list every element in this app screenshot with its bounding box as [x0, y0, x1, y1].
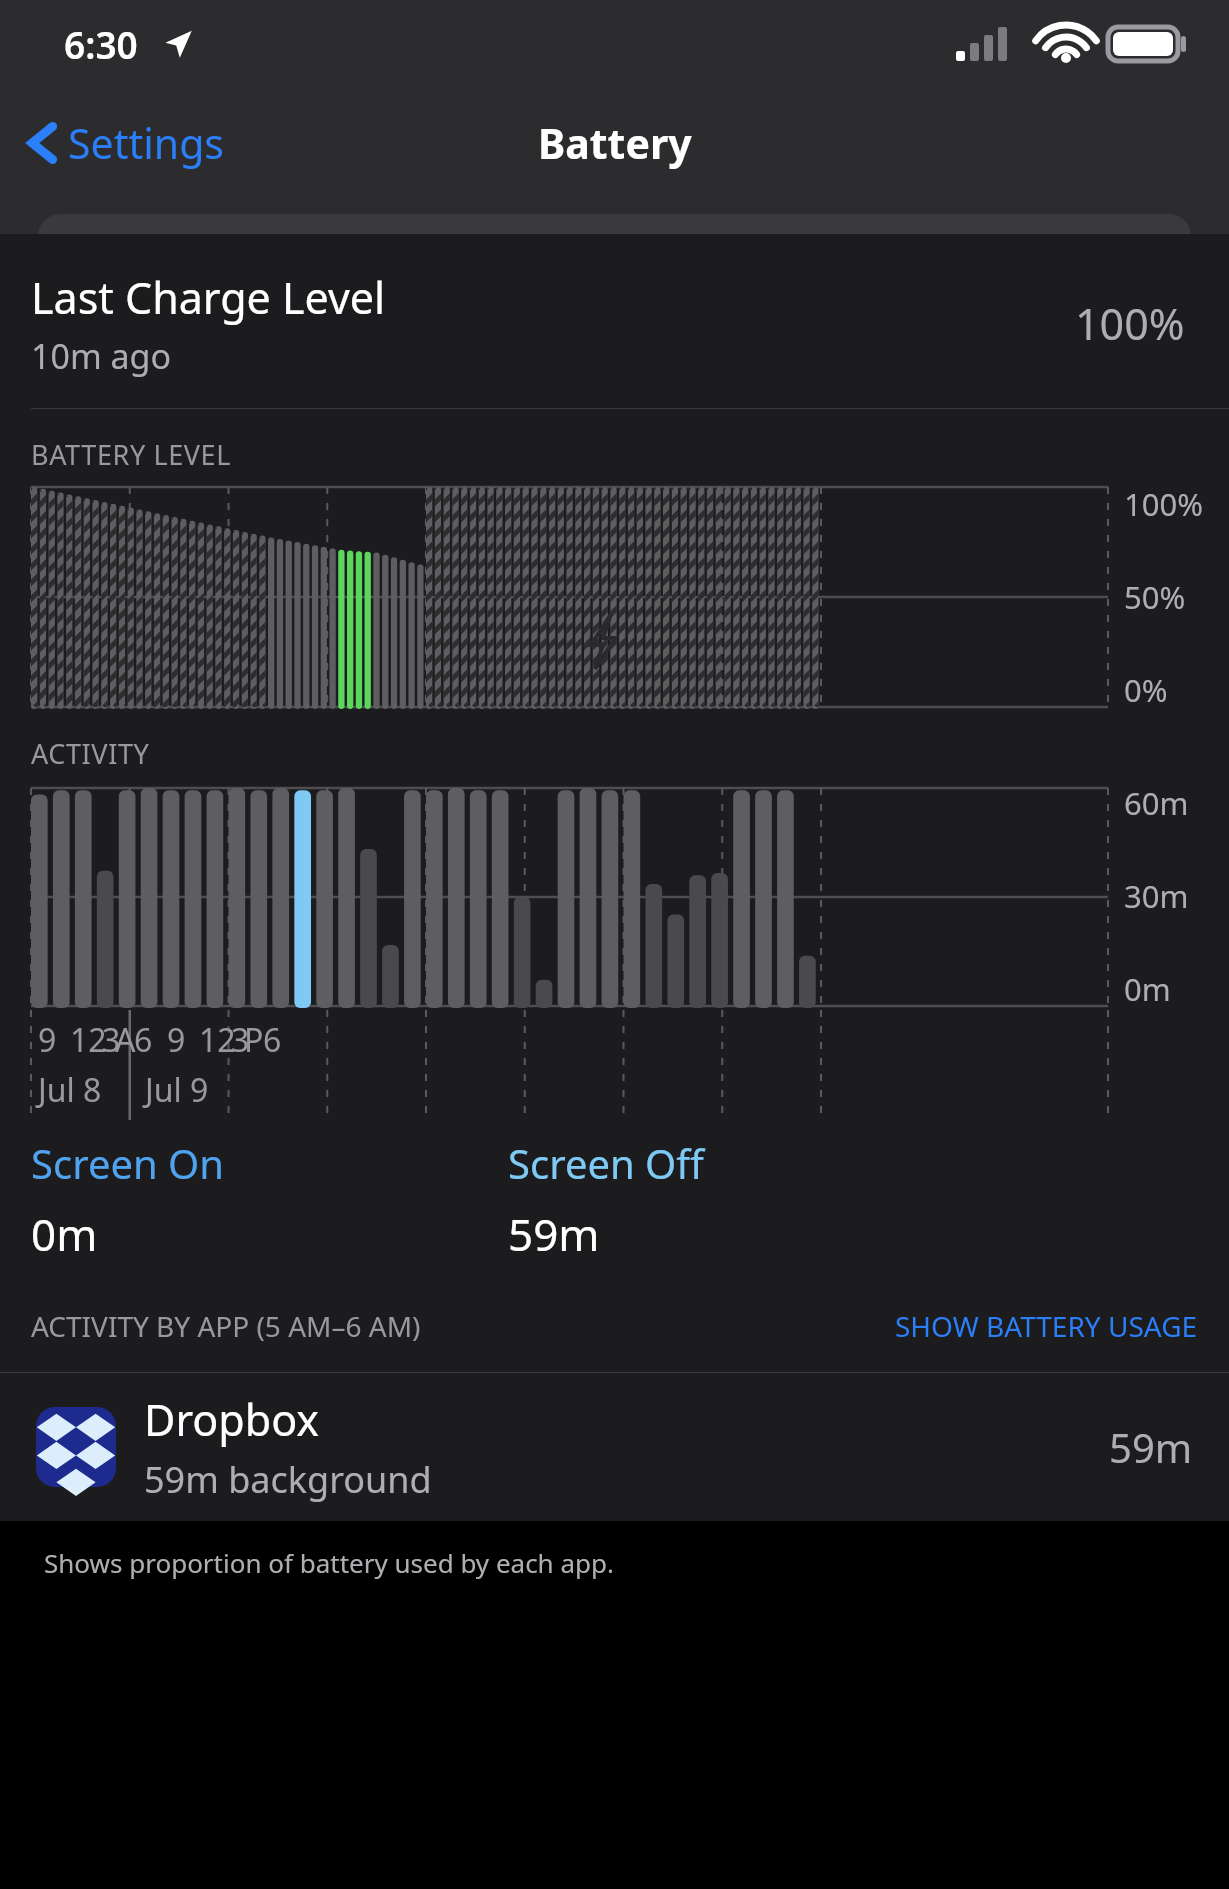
staticText: Battery: [538, 115, 692, 171]
staticText: Shows proportion of battery used by each…: [44, 1545, 614, 1580]
staticText: 59m: [1109, 1420, 1193, 1474]
staticText: 0%: [1124, 669, 1168, 711]
staticText: 9: [167, 1018, 186, 1062]
staticText: SHOW BATTERY USAGE: [895, 1307, 1198, 1345]
staticText: Screen Off: [508, 1136, 704, 1190]
staticText: 6: [263, 1018, 282, 1062]
staticText: BATTERY LEVEL: [31, 436, 231, 473]
staticText: 3: [102, 1018, 121, 1062]
staticText: 12 P: [199, 1018, 264, 1062]
staticText: 59m background: [144, 1455, 432, 1504]
staticText: 6: [134, 1018, 153, 1062]
staticText: Settings: [68, 115, 225, 171]
staticText: Jul 8: [38, 1068, 102, 1112]
staticText: 60m: [1124, 782, 1189, 824]
staticText: 9: [38, 1018, 57, 1062]
staticText: 100%: [1124, 483, 1203, 525]
button[interactable]: Settings: [20, 109, 233, 177]
staticText: 12 A: [70, 1018, 136, 1062]
staticText: 3: [231, 1018, 250, 1062]
staticText: 6:30: [64, 19, 138, 69]
button[interactable]: Dropbox: [0, 1373, 1229, 1521]
staticText: 50%: [1124, 576, 1186, 618]
staticText: 59m: [508, 1204, 600, 1264]
staticText: Screen On: [31, 1136, 225, 1190]
button[interactable]: Screen On: [31, 1136, 225, 1264]
staticText: Jul 9: [145, 1068, 209, 1112]
staticText: 30m: [1124, 875, 1189, 917]
staticText: 100%: [1075, 294, 1185, 353]
staticText: ACTIVITY: [31, 735, 150, 772]
staticText: 0m: [31, 1204, 98, 1264]
staticText: Last Charge Level: [31, 268, 386, 327]
staticText: ACTIVITY BY APP (5 AM–6 AM): [31, 1307, 421, 1345]
staticText: 10m ago: [31, 333, 172, 379]
staticText: Dropbox: [144, 1390, 320, 1449]
button[interactable]: Screen Off: [508, 1136, 704, 1264]
staticText: 0m: [1124, 968, 1171, 1010]
button[interactable]: SHOW BATTERY USAGE: [895, 1307, 1229, 1345]
